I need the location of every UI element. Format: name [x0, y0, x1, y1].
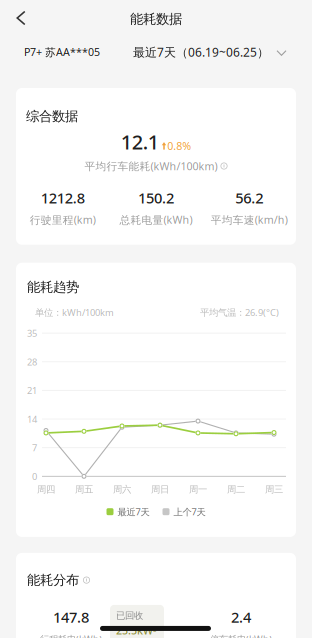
staticText: 能耗分布 [27, 572, 79, 588]
button[interactable]: 返回 [0, 0, 50, 36]
staticText: 最近7天 [117, 505, 149, 518]
staticText: 14 [27, 413, 37, 425]
staticText: 上个7天 [173, 505, 205, 518]
staticText: 25.5kWh [116, 623, 156, 638]
staticText: 28 [27, 356, 37, 368]
staticText: 0 [32, 470, 37, 482]
staticText: 1212.8 [41, 188, 85, 208]
staticText: 停车耗电(kWh) [210, 633, 272, 638]
staticText: 能耗数据 [130, 11, 182, 27]
staticText: 平均车速(km/h) [211, 213, 288, 227]
staticText: 行程耗电(kWh) [40, 633, 102, 638]
staticText: P7+ 苏AA***05 [24, 45, 100, 59]
staticText: 7 [32, 441, 37, 454]
staticText: 周四 [37, 484, 55, 495]
staticText: 行驶里程(km) [30, 213, 96, 227]
staticText: 周五 [75, 484, 93, 495]
staticText: 147.8 [53, 607, 89, 627]
staticText: 21 [27, 384, 37, 397]
staticText: 已回收 [116, 610, 143, 621]
staticText: 56.2 [235, 188, 263, 208]
staticText: 最近7天（06.19~06.25） [133, 44, 269, 60]
staticText: 周六 [113, 484, 131, 495]
staticText: 周三 [265, 484, 283, 495]
staticText: 35 [27, 327, 37, 339]
staticText: 150.2 [138, 188, 174, 208]
staticText: 12.1 [121, 128, 159, 155]
staticText: 0.8% [167, 139, 191, 153]
staticText: 总耗电量(kWh) [119, 213, 192, 227]
staticText: 2.4 [231, 607, 251, 627]
staticText: 能耗趋势 [27, 279, 79, 295]
staticText: 单位：kWh/100km [35, 306, 114, 318]
staticText: 平均气温：26.9(°C) [200, 306, 279, 318]
staticText: 周日 [151, 484, 169, 495]
staticText: 综合数据 [26, 108, 78, 124]
staticText: 周二 [227, 484, 245, 495]
staticText: 周一 [189, 484, 207, 495]
staticText: 平均行车能耗(kWh/100km) [84, 159, 217, 173]
button[interactable]: 最近7天（06.19~06.25） [133, 44, 286, 60]
